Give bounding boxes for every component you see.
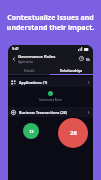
staticText: Applications (1) bbox=[19, 80, 87, 85]
staticText: Governance Rules bbox=[39, 98, 62, 102]
button[interactable]: Back bbox=[10, 55, 18, 63]
staticText: Contextualize issues and understand thei… bbox=[5, 13, 96, 33]
staticText: Details bbox=[24, 68, 35, 72]
button[interactable]: 8h bbox=[86, 57, 90, 61]
button[interactable]: Business Transactions (26) bbox=[8, 107, 93, 117]
staticText: 12 bbox=[29, 129, 34, 134]
staticText: 9:41 bbox=[12, 46, 19, 51]
button[interactable]: 12 bbox=[23, 123, 39, 139]
button[interactable]: Time range bbox=[78, 55, 85, 62]
staticText: Governance Rules bbox=[18, 54, 56, 60]
button[interactable]: Applications (1) bbox=[8, 77, 93, 87]
button[interactable]: Details bbox=[8, 65, 50, 74]
button[interactable]: Relationships bbox=[50, 65, 93, 74]
button[interactable]: Governance Rules node bbox=[48, 91, 53, 96]
staticText: 26 bbox=[70, 129, 77, 137]
staticText: Relationships bbox=[60, 68, 83, 72]
staticText: Business Transactions (26) bbox=[19, 110, 87, 115]
staticText: Application bbox=[18, 60, 34, 64]
button[interactable]: 26 bbox=[58, 118, 88, 148]
